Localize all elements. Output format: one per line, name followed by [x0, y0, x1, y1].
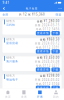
staticText: 筛选: [56, 13, 62, 16]
button[interactable]: 查看详情: [36, 86, 50, 90]
staticText: 明远电子: [6, 78, 18, 81]
staticText: 全部: [2, 13, 8, 16]
button[interactable]: 全部: [2, 13, 8, 16]
button[interactable]: 查看详情: [36, 49, 50, 54]
staticText: 销售方: [6, 56, 15, 59]
staticText: 号码 0112 3456: [36, 27, 60, 31]
button[interactable]: 查看详情: [36, 67, 50, 72]
staticText: 金额 ¥1,280.00: [37, 19, 60, 23]
staticText: 我的: [53, 95, 59, 98]
staticText: 查看详情: [37, 32, 49, 35]
button[interactable]: 首页: [0, 89, 16, 100]
staticText: 开票 2024-03-15: [35, 23, 60, 27]
staticText: 下载: [53, 50, 59, 53]
staticText: 销售方: [6, 38, 15, 41]
staticText: 电子发票: [26, 7, 38, 10]
button[interactable]: 下载: [51, 49, 60, 54]
staticText: 下载: [53, 32, 59, 35]
staticText: 查看详情: [37, 50, 49, 53]
staticText: 销售方: [6, 74, 15, 77]
button[interactable]: 开票: [32, 89, 48, 100]
staticText: 金额 ¥860.50: [40, 38, 60, 41]
staticText: 号码 0112 3391: [36, 46, 60, 49]
staticText: 云科技: [6, 23, 15, 27]
staticText: 海川服务: [6, 60, 18, 63]
staticText: 金额 ¥3,450.00: [37, 56, 60, 59]
staticText: 下载: [53, 68, 59, 71]
staticText: 共 12 张 ¥15,360: [19, 13, 45, 16]
staticText: 开票 2024-03-02: [35, 78, 60, 82]
staticText: 号码 0112 3277: [36, 64, 60, 67]
staticText: 9:41: [2, 1, 9, 4]
staticText: 下载: [53, 86, 59, 89]
staticText: 查看详情: [37, 86, 49, 89]
staticText: 首页: [5, 95, 11, 98]
staticText: 销售方: [6, 19, 15, 23]
button[interactable]: 筛选: [56, 13, 62, 16]
staticText: 金额 ¥298.00: [40, 74, 60, 77]
staticText: 开票 2024-03-08: [35, 60, 60, 63]
staticText: 开票: [37, 95, 43, 98]
button[interactable]: 下载: [51, 86, 60, 90]
staticText: 查看详情: [37, 68, 49, 71]
button[interactable]: 更多: [58, 7, 62, 10]
button[interactable]: 返回: [2, 7, 5, 10]
button[interactable]: 我的: [48, 89, 64, 100]
button[interactable]: 查看详情: [36, 31, 50, 35]
staticText: 发票: [21, 95, 27, 98]
staticText: 开票 2024-03-12: [35, 42, 60, 45]
staticText: 号码 0112 3104: [36, 82, 60, 86]
button[interactable]: 下载: [51, 31, 60, 35]
button[interactable]: 发票: [16, 89, 32, 100]
staticText: 星辰贸易: [6, 41, 18, 45]
button[interactable]: 下载: [51, 67, 60, 72]
